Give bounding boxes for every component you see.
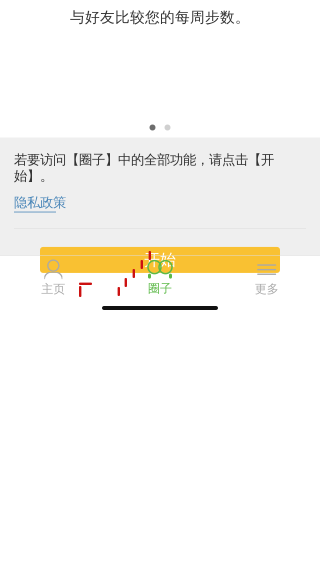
staticText: 与好友比较您的每周步数。: [70, 8, 250, 26]
staticText: 主页: [41, 282, 65, 296]
staticText: 圈子: [148, 281, 172, 296]
button[interactable]: 主页: [0, 256, 107, 300]
button[interactable]: 开始: [40, 247, 280, 273]
button[interactable]: 隐私政策: [14, 194, 66, 212]
button[interactable]: 圈子: [107, 256, 213, 300]
staticText: 更多: [255, 282, 279, 296]
staticText: 若要访问【圈子】中的全部功能，请点击【开始】。: [14, 151, 274, 184]
staticText: 开始: [144, 250, 176, 270]
button[interactable]: 更多: [213, 256, 320, 300]
staticText: 隐私政策: [14, 194, 66, 211]
